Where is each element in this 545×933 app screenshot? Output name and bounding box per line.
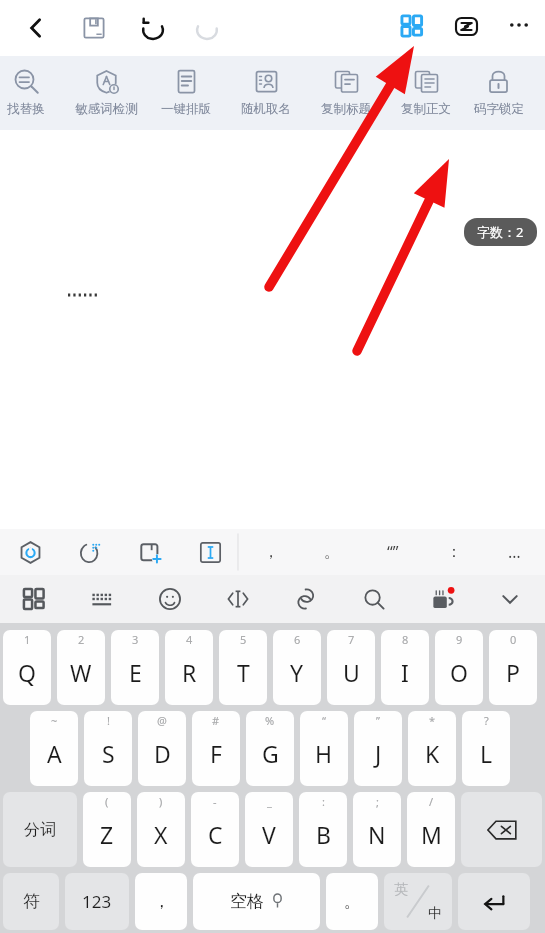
button[interactable]: Undo	[124, 0, 180, 56]
button[interactable]: Save	[66, 0, 122, 56]
button[interactable]: ：	[423, 529, 484, 575]
button[interactable]: Theme store	[408, 575, 476, 623]
staticText: 空格	[230, 891, 264, 912]
button[interactable]: 英	[384, 873, 452, 930]
button[interactable]: Backspace	[461, 792, 542, 867]
button[interactable]: _	[245, 792, 293, 867]
staticText: ，	[263, 542, 279, 562]
button[interactable]: …	[484, 529, 545, 575]
staticText: 中	[428, 905, 442, 923]
button[interactable]: 0	[489, 630, 537, 705]
button[interactable]: 2	[57, 630, 105, 705]
staticText: X	[154, 819, 168, 850]
staticText: L	[480, 738, 493, 769]
staticText: 码字锁定	[474, 101, 524, 117]
button[interactable]: 。	[326, 873, 378, 930]
button[interactable]: 字数：2	[464, 218, 537, 246]
staticText: O	[450, 657, 468, 688]
button[interactable]: (	[83, 792, 131, 867]
button[interactable]: %	[246, 711, 294, 786]
button[interactable]: ，	[240, 529, 301, 575]
staticText: %	[265, 713, 275, 728]
button[interactable]: 复制标题	[306, 56, 386, 130]
button[interactable]: Back	[8, 0, 64, 56]
staticText: 符	[23, 891, 40, 912]
button[interactable]: 123	[65, 873, 129, 930]
staticText: ，	[153, 891, 170, 912]
staticText: 6	[294, 632, 301, 647]
button[interactable]: -	[191, 792, 239, 867]
staticText: 2	[78, 632, 85, 647]
staticText: 复制标题	[321, 101, 371, 117]
button[interactable]: Convert	[440, 0, 492, 52]
button[interactable]: @	[138, 711, 186, 786]
button[interactable]: #	[192, 711, 240, 786]
button[interactable]: 8	[381, 630, 429, 705]
button[interactable]: Keyboard layout	[68, 575, 136, 623]
button[interactable]: /	[407, 792, 455, 867]
staticText: E	[129, 657, 142, 688]
button[interactable]: 码字锁定	[466, 56, 531, 130]
button[interactable]: ;	[353, 792, 401, 867]
staticText: ;	[376, 794, 379, 809]
button[interactable]: 7	[327, 630, 375, 705]
button[interactable]: 1	[3, 630, 51, 705]
button[interactable]: 5	[219, 630, 267, 705]
staticText: 123	[82, 890, 112, 913]
button[interactable]: ?	[462, 711, 510, 786]
button[interactable]: More options	[494, 0, 544, 50]
button[interactable]: 空格	[193, 873, 320, 930]
button[interactable]: Search	[340, 575, 408, 623]
staticText: 7	[348, 632, 355, 647]
button[interactable]: “	[300, 711, 348, 786]
button[interactable]: 6	[273, 630, 321, 705]
button[interactable]: 分词	[3, 792, 77, 867]
staticText: ?	[484, 713, 489, 728]
button[interactable]: “”	[362, 529, 423, 575]
staticText: 字数：2	[477, 223, 524, 241]
button[interactable]: 3	[111, 630, 159, 705]
button[interactable]: Clipboard	[272, 575, 340, 623]
button[interactable]: !	[84, 711, 132, 786]
button[interactable]: Cursor control	[204, 575, 272, 623]
button[interactable]: New note	[120, 529, 180, 575]
button[interactable]: ，	[135, 873, 187, 930]
button[interactable]: ”	[354, 711, 402, 786]
staticText: F	[210, 738, 222, 769]
button[interactable]: 复制正文	[386, 56, 466, 130]
staticText: G	[262, 738, 279, 769]
button[interactable]: Panels	[0, 575, 68, 623]
button[interactable]: Voice input	[0, 529, 60, 575]
button[interactable]: )	[137, 792, 185, 867]
staticText: ”	[376, 713, 380, 728]
staticText: …	[508, 541, 521, 563]
button[interactable]: Hide keyboard	[476, 575, 544, 623]
button[interactable]: Layout grid	[386, 0, 438, 52]
button[interactable]: Enter	[458, 873, 530, 930]
button[interactable]: *	[408, 711, 456, 786]
staticText: 1	[24, 632, 31, 647]
staticText: 3	[132, 632, 139, 647]
staticText: 。	[324, 542, 340, 562]
staticText: @	[157, 713, 167, 728]
staticText: !	[107, 713, 110, 728]
button[interactable]: Emoji	[136, 575, 204, 623]
button[interactable]: :	[299, 792, 347, 867]
staticText: C	[208, 819, 223, 850]
staticText: P	[506, 657, 520, 688]
staticText: A	[47, 738, 62, 769]
button[interactable]: 。	[301, 529, 362, 575]
button[interactable]: ~	[30, 711, 78, 786]
button[interactable]: 随机取名	[226, 56, 306, 130]
button[interactable]: 9	[435, 630, 483, 705]
staticText: K	[425, 738, 440, 769]
staticText: 4	[186, 632, 193, 647]
button[interactable]: 找替换	[0, 56, 66, 130]
button[interactable]: Redo	[180, 0, 236, 56]
button[interactable]: Night mode	[60, 529, 120, 575]
button[interactable]: 4	[165, 630, 213, 705]
button[interactable]: 符	[3, 873, 59, 930]
button[interactable]: Text style	[180, 529, 240, 575]
button[interactable]: 一键排版	[146, 56, 226, 130]
button[interactable]: 敏感词检测	[66, 56, 146, 130]
